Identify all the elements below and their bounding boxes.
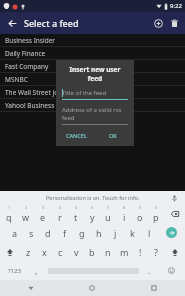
staticText: a bbox=[12, 227, 18, 239]
staticText: p bbox=[153, 211, 159, 223]
button[interactable]: Back bbox=[4, 15, 20, 31]
staticText: q bbox=[6, 211, 12, 223]
button[interactable]: 5 bbox=[68, 204, 84, 223]
button[interactable]: OK bbox=[107, 130, 119, 141]
staticText: w bbox=[22, 211, 30, 223]
button[interactable]: 7 bbox=[100, 204, 116, 223]
staticText: 8 bbox=[123, 205, 126, 210]
button[interactable]: m bbox=[116, 242, 132, 261]
staticText: 3 bbox=[42, 205, 45, 210]
button[interactable]: v bbox=[68, 242, 84, 261]
staticText: , bbox=[35, 265, 38, 276]
staticText: ?123 bbox=[8, 267, 21, 275]
staticText: x bbox=[42, 246, 47, 258]
staticText: b bbox=[89, 246, 95, 258]
button[interactable]: 0 bbox=[148, 204, 164, 223]
staticText: 9:22 bbox=[170, 2, 182, 10]
button[interactable]: Fast Company bbox=[0, 60, 185, 73]
staticText: t bbox=[74, 211, 78, 223]
staticText: ? bbox=[154, 246, 158, 258]
button[interactable]: Voice input bbox=[168, 192, 180, 204]
button[interactable]: Emoji bbox=[158, 261, 185, 280]
button[interactable]: Business Insider bbox=[0, 34, 185, 47]
button[interactable]: z bbox=[20, 242, 36, 261]
staticText: MSNBC bbox=[5, 75, 28, 84]
staticText: u bbox=[105, 211, 111, 223]
button[interactable]: g bbox=[73, 223, 90, 242]
button[interactable]: Recents bbox=[123, 280, 185, 296]
button[interactable]: CANCEL bbox=[64, 130, 89, 141]
button[interactable]: h bbox=[90, 223, 107, 242]
button[interactable]: 6 bbox=[84, 204, 100, 223]
button[interactable]: Yahoo! Business News bbox=[0, 99, 185, 112]
button[interactable]: Shift bbox=[0, 242, 20, 261]
staticText: 2 bbox=[25, 205, 28, 210]
button[interactable]: l bbox=[141, 223, 158, 242]
staticText: l bbox=[148, 227, 151, 239]
button[interactable]: f bbox=[56, 223, 73, 242]
staticText: d bbox=[45, 227, 51, 239]
button[interactable]: 4 bbox=[51, 204, 68, 223]
button[interactable]: , bbox=[28, 261, 45, 280]
staticText: Title of the feed bbox=[62, 89, 107, 97]
staticText: Personalization is on. Touch for info. bbox=[46, 194, 140, 201]
button[interactable]: 2 bbox=[17, 204, 34, 223]
button[interactable]: Delete bbox=[166, 15, 182, 31]
button[interactable]: The Wall Street Journal bbox=[0, 86, 185, 99]
button[interactable]: Home bbox=[61, 280, 123, 296]
button[interactable]: Add feed bbox=[150, 15, 166, 31]
button[interactable]: ! bbox=[132, 242, 148, 261]
staticText: z bbox=[26, 246, 31, 258]
staticText: o bbox=[137, 211, 143, 223]
button[interactable]: b bbox=[84, 242, 100, 261]
button[interactable]: k bbox=[124, 223, 141, 242]
button[interactable]: MSNBC bbox=[0, 73, 185, 86]
button[interactable]: Back bbox=[0, 280, 61, 296]
staticText: f bbox=[63, 227, 67, 239]
staticText: e bbox=[40, 211, 46, 223]
staticText: The Wall Street Journal bbox=[5, 88, 75, 97]
button[interactable]: s bbox=[23, 223, 39, 242]
button[interactable]: c bbox=[52, 242, 68, 261]
button[interactable]: a bbox=[7, 223, 23, 242]
staticText: n bbox=[105, 246, 111, 258]
button[interactable]: 9 bbox=[132, 204, 148, 223]
staticText: h bbox=[96, 227, 102, 239]
staticText: 5 bbox=[75, 205, 78, 210]
staticText: 1 bbox=[8, 205, 11, 210]
staticText: y bbox=[90, 211, 95, 223]
button[interactable]: 3 bbox=[34, 204, 51, 223]
button[interactable]: 1 bbox=[0, 204, 17, 223]
button[interactable]: x bbox=[36, 242, 52, 261]
button[interactable]: ? bbox=[148, 242, 164, 261]
staticText: . bbox=[148, 265, 151, 276]
button[interactable]: d bbox=[39, 223, 56, 242]
staticText: Business Insider bbox=[5, 36, 55, 45]
button[interactable]: ?123 bbox=[0, 261, 28, 280]
staticText: k bbox=[130, 227, 135, 239]
button[interactable]: Address of a valid rss feed bbox=[62, 106, 128, 125]
staticText: Daily Finance bbox=[5, 49, 46, 58]
staticText: 6 bbox=[91, 205, 94, 210]
button[interactable]: Shift bbox=[164, 242, 185, 261]
button[interactable]: . bbox=[141, 261, 158, 280]
button[interactable]: n bbox=[100, 242, 116, 261]
button[interactable]: j bbox=[107, 223, 124, 242]
staticText: 0 bbox=[155, 205, 158, 210]
staticText: Fast Company bbox=[5, 62, 49, 71]
button[interactable]: Title of the feed bbox=[62, 89, 128, 100]
staticText: ! bbox=[139, 246, 142, 258]
staticText: CANCEL bbox=[66, 132, 87, 139]
staticText: j bbox=[114, 227, 117, 239]
staticText: 7 bbox=[107, 205, 110, 210]
staticText: Insert new user feed bbox=[62, 65, 128, 83]
button[interactable]: Space bbox=[45, 261, 141, 280]
button[interactable]: Backspace bbox=[164, 204, 185, 223]
staticText: m bbox=[120, 246, 129, 258]
staticText: Yahoo! Business News bbox=[5, 101, 73, 110]
button[interactable]: Daily Finance bbox=[0, 47, 185, 60]
staticText: Select a feed bbox=[24, 17, 79, 29]
button[interactable]: 8 bbox=[116, 204, 132, 223]
button[interactable]: Enter bbox=[158, 223, 185, 242]
staticText: g bbox=[79, 227, 85, 239]
